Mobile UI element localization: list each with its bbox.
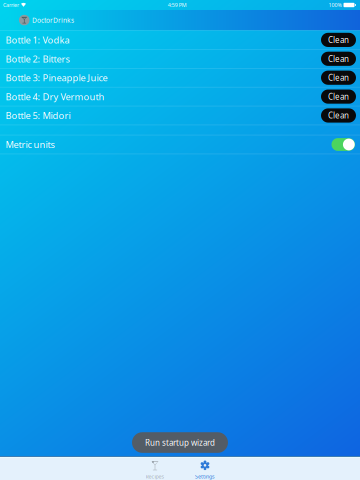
button[interactable]: Clean bbox=[321, 33, 356, 47]
button[interactable] bbox=[331, 137, 355, 151]
staticText: Clean bbox=[328, 110, 349, 121]
button[interactable]: Settings bbox=[180, 458, 230, 480]
button[interactable]: Clean bbox=[321, 71, 356, 85]
staticText: Recipes bbox=[145, 473, 164, 480]
staticText: 4:59 PM bbox=[168, 1, 187, 9]
staticText: Clean bbox=[328, 72, 349, 83]
staticText: Bottle 4: Dry Vermouth bbox=[5, 90, 104, 103]
button[interactable]: Clean bbox=[321, 89, 356, 104]
button[interactable]: Clean bbox=[321, 52, 356, 66]
staticText: Carrier bbox=[3, 1, 19, 9]
button[interactable]: Recipes bbox=[130, 458, 180, 480]
button[interactable]: Clean bbox=[321, 108, 356, 123]
staticText: Bottle 5: Midori bbox=[5, 109, 70, 122]
staticText: Clean bbox=[328, 91, 349, 102]
staticText: Bottle 3: Pineapple Juice bbox=[5, 71, 107, 84]
staticText: DoctorDrinks bbox=[32, 16, 74, 25]
staticText: Settings bbox=[195, 473, 215, 480]
staticText: Run startup wizard bbox=[145, 437, 215, 448]
staticText: Bottle 2: Bitters bbox=[5, 53, 69, 65]
staticText: Bottle 1: Vodka bbox=[5, 34, 69, 46]
staticText: Clean bbox=[328, 53, 349, 64]
staticText: Clean bbox=[328, 35, 349, 45]
staticText: 100% bbox=[328, 1, 341, 9]
button[interactable]: Run startup wizard bbox=[132, 432, 228, 453]
staticText: Metric units bbox=[5, 138, 54, 151]
